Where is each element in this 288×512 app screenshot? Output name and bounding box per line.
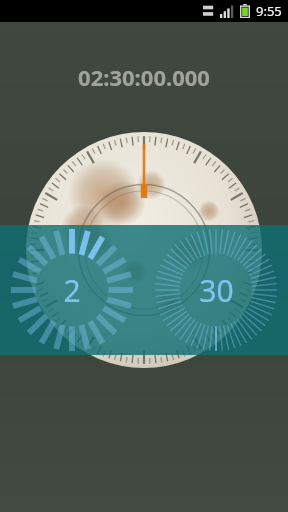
- button[interactable]: Minutes 30: [144, 225, 288, 355]
- staticText: 30: [199, 270, 234, 311]
- staticText: 9:55: [256, 2, 282, 20]
- button[interactable]: 02:30:00.000: [0, 62, 288, 92]
- button[interactable]: Hours 2: [0, 225, 144, 355]
- staticText: 02:30:00.000: [78, 62, 210, 92]
- staticText: 2: [63, 270, 81, 311]
